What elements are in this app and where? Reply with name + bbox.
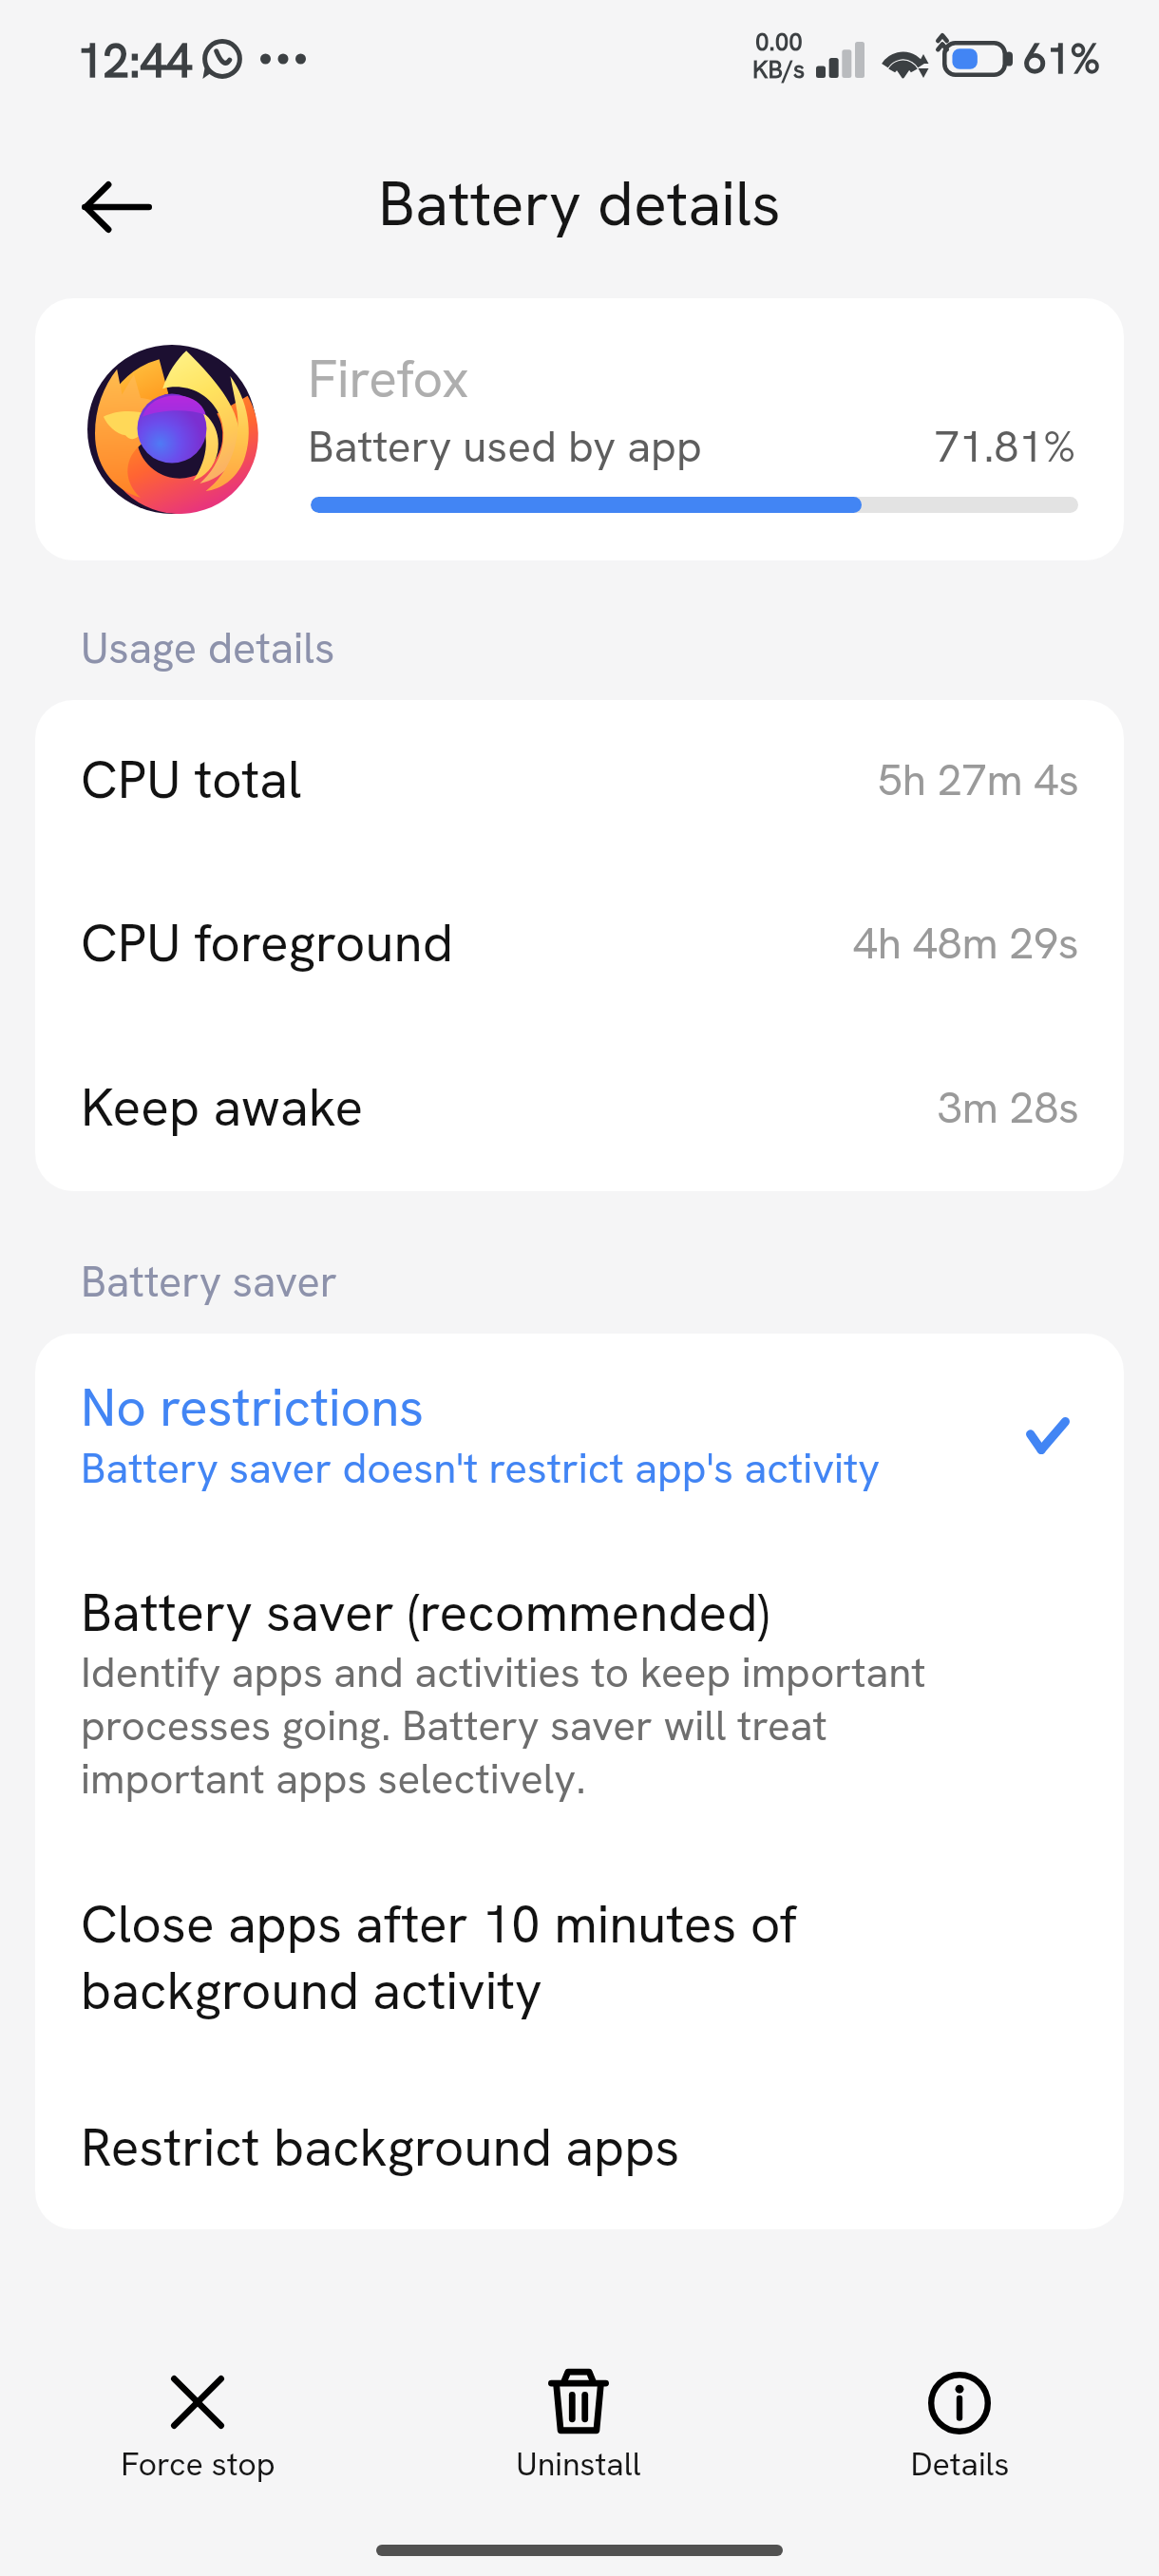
button[interactable]: Uninstall bbox=[455, 2348, 702, 2491]
staticText: CPU foreground bbox=[81, 915, 453, 975]
staticText: Battery saver bbox=[81, 1260, 338, 1307]
staticText: No restrictions bbox=[81, 1382, 425, 1439]
staticText: CPU total bbox=[81, 751, 302, 812]
button[interactable]: No restrictions bbox=[35, 1334, 1124, 1554]
staticText: Battery details bbox=[378, 174, 781, 240]
staticText: Battery saver doesn't restrict app's act… bbox=[81, 1448, 881, 1493]
staticText: Uninstall bbox=[516, 2448, 641, 2484]
staticText: Battery used by app bbox=[308, 426, 703, 473]
staticText: Close apps after 10 minutes of backgroun… bbox=[81, 1891, 831, 2024]
button[interactable]: Battery saver (recommended) bbox=[35, 1554, 1124, 1864]
button[interactable]: Force stop bbox=[74, 2355, 321, 2497]
staticText: 3m 28s bbox=[938, 1084, 1079, 1135]
staticText: Firefox bbox=[308, 353, 469, 410]
staticText: Usage details bbox=[81, 627, 335, 673]
button[interactable]: Details bbox=[836, 2351, 1083, 2493]
button[interactable]: Back bbox=[71, 161, 162, 253]
button[interactable]: Restrict background apps bbox=[35, 2073, 1124, 2229]
staticText: 71.81% bbox=[935, 426, 1076, 473]
staticText: KB/s bbox=[752, 57, 806, 85]
staticText: Identify apps and activities to keep imp… bbox=[81, 1646, 955, 1806]
staticText: Restrict background apps bbox=[81, 2122, 680, 2179]
staticText: Keep awake bbox=[81, 1079, 364, 1140]
staticText: Force stop bbox=[121, 2448, 275, 2484]
staticText: 12:44 bbox=[77, 38, 193, 88]
button[interactable]: CPU total bbox=[35, 700, 1124, 863]
staticText: Battery saver (recommended) bbox=[81, 1587, 769, 1644]
staticText: Details bbox=[910, 2448, 1010, 2484]
button[interactable]: CPU foreground bbox=[35, 863, 1124, 1027]
staticText: 61% bbox=[1024, 39, 1101, 84]
staticText: 0.00 bbox=[755, 29, 803, 57]
button[interactable]: Keep awake bbox=[35, 1027, 1124, 1191]
button[interactable]: Firefox bbox=[35, 298, 1124, 560]
staticText: 4h 48m 29s bbox=[853, 919, 1079, 971]
button[interactable]: Close apps after 10 minutes of backgroun… bbox=[35, 1864, 1124, 2073]
staticText: 5h 27m 4s bbox=[878, 756, 1079, 807]
